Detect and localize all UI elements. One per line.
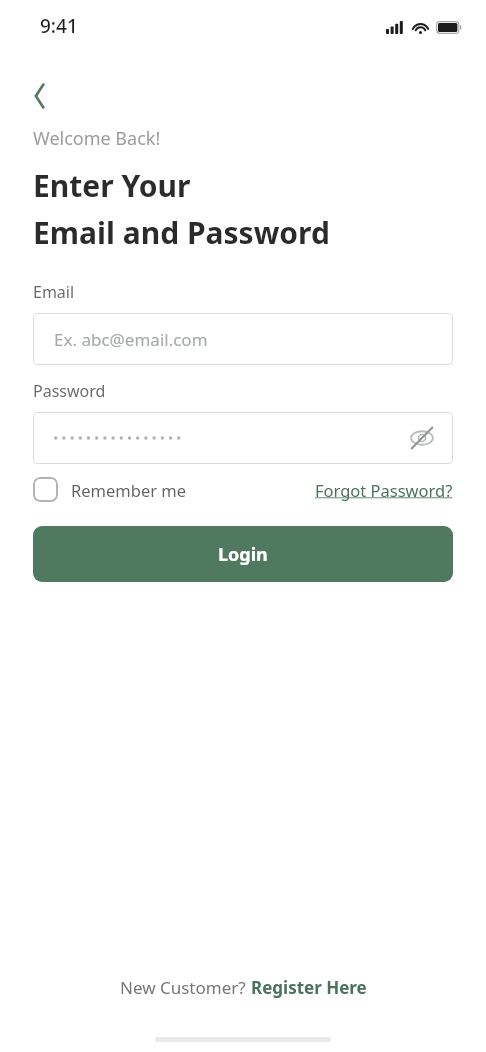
- button[interactable]: Back: [22, 76, 62, 116]
- staticText: Remember me: [71, 479, 187, 501]
- staticText: New Customer?: [120, 976, 251, 999]
- staticText: Email: [33, 281, 75, 303]
- staticText: Email and Password: [33, 212, 330, 253]
- staticText: 9:41: [40, 13, 78, 39]
- staticText: Ex. abc@email.com: [54, 328, 208, 351]
- staticText: Password: [33, 380, 106, 402]
- staticText: Enter Your: [33, 165, 191, 206]
- button[interactable]: Forgot Password?: [315, 479, 453, 501]
- button[interactable]: Ex. abc@email.com: [33, 313, 453, 365]
- button[interactable]: Login: [33, 526, 453, 582]
- staticText: Login: [218, 542, 268, 567]
- staticText: Register Here: [251, 976, 367, 999]
- staticText: Forgot Password?: [315, 479, 453, 501]
- button[interactable]: New Customer?: [0, 970, 486, 1005]
- staticText: Welcome Back!: [33, 126, 161, 151]
- button[interactable]: Show password: [33, 412, 453, 464]
- button[interactable]: Show password: [405, 421, 439, 455]
- button[interactable]: Remember me: [33, 477, 187, 502]
